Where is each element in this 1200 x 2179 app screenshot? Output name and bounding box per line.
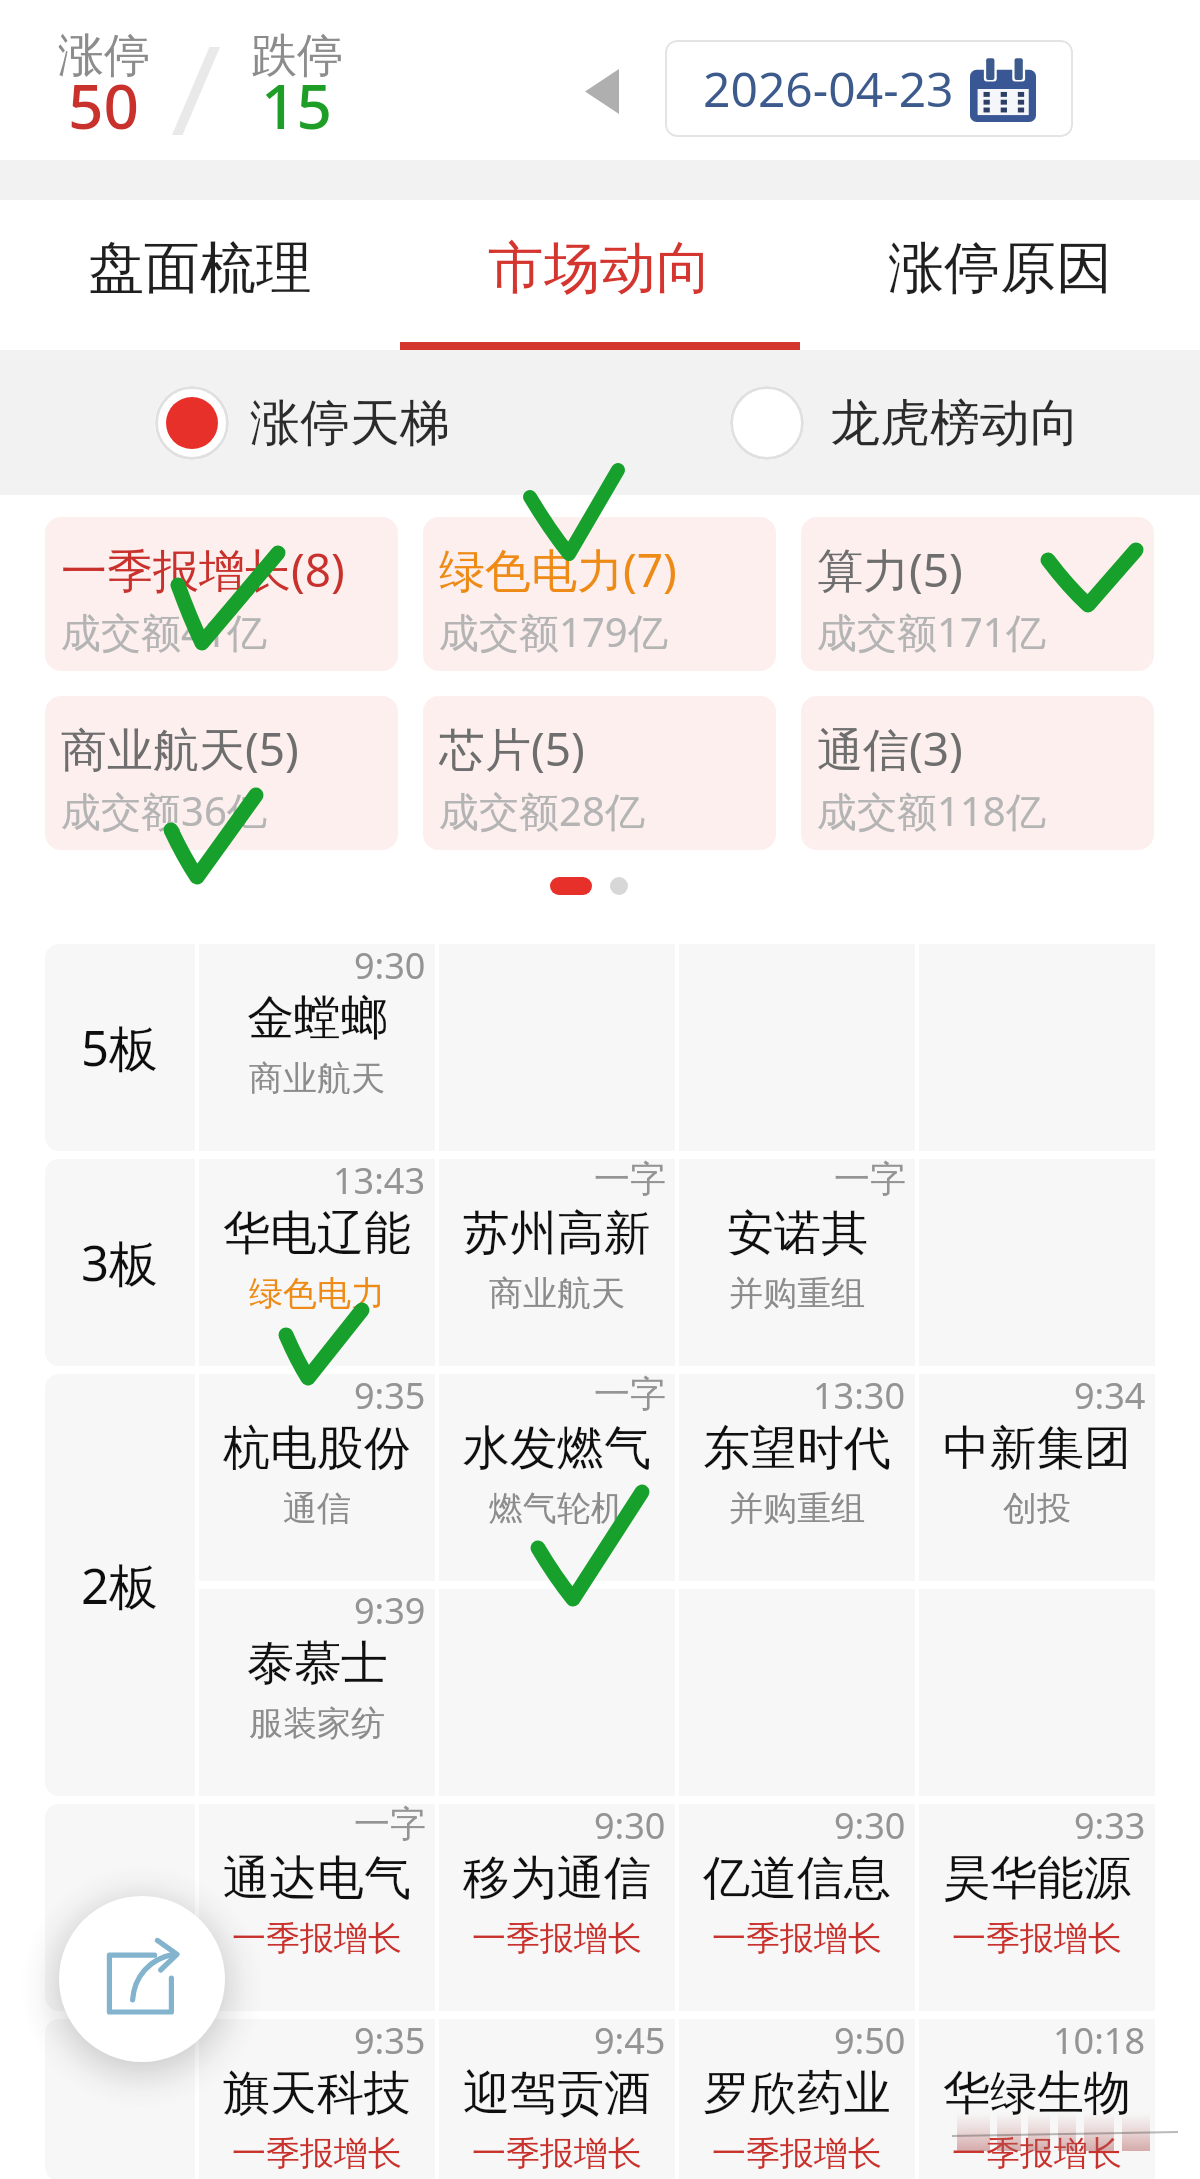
button[interactable]: 市场动向 <box>400 200 800 350</box>
button[interactable]: Share <box>59 1896 225 2062</box>
staticText: 一字 <box>834 1156 906 1201</box>
staticText: 商业航天(5) <box>61 717 299 780</box>
button[interactable]: 芯片(5) <box>423 696 776 850</box>
staticText: 昊华能源 <box>943 1849 1131 1908</box>
button[interactable]: 9:45 <box>439 2019 675 2179</box>
staticText: 13:30 <box>813 1371 906 1420</box>
button[interactable]: 9:35 <box>199 2019 435 2179</box>
staticText: 涨停原因 <box>888 233 1112 304</box>
staticText: 3板 <box>81 1229 159 1296</box>
button[interactable]: 9:30 <box>439 1804 675 2011</box>
staticText: 服装家纺 <box>249 1702 385 1745</box>
staticText: 成交额36亿 <box>61 783 267 838</box>
staticText: 市场动向 <box>488 233 712 304</box>
staticText: 成交额118亿 <box>817 783 1046 838</box>
staticText: 东望时代 <box>703 1419 891 1478</box>
staticText: 安诺其 <box>727 1204 868 1263</box>
button[interactable]: 9:50 <box>679 2019 915 2179</box>
button[interactable]: 一字 <box>199 1804 435 2011</box>
staticText: 一季报增长 <box>952 2132 1122 2175</box>
button[interactable]: 绿色电力(7) <box>423 517 776 671</box>
staticText: 并购重组 <box>729 1487 865 1530</box>
button[interactable]: 9:30 <box>199 944 435 1151</box>
staticText: 罗欣药业 <box>703 2064 891 2123</box>
button[interactable]: 龙虎榜动向 <box>730 386 1080 460</box>
button[interactable]: 涨停原因 <box>800 200 1200 350</box>
button[interactable]: 9:35 <box>199 1374 435 1581</box>
staticText: 跌停 <box>251 27 343 85</box>
staticText: 5板 <box>81 1014 159 1081</box>
staticText: 泰慕士 <box>247 1634 388 1693</box>
staticText: 9:45 <box>594 2016 666 2065</box>
staticText: 移为通信 <box>463 1849 651 1908</box>
staticText: 成交额179亿 <box>439 604 668 659</box>
button[interactable]: 一字 <box>439 1374 675 1581</box>
staticText: 中新集团 <box>943 1419 1131 1478</box>
button[interactable]: 13:30 <box>679 1374 915 1581</box>
button[interactable]: 涨停天梯 <box>155 386 450 460</box>
button[interactable]: 2026-04-23 <box>665 40 1073 137</box>
staticText: 15 <box>261 63 332 147</box>
staticText: 龙虎榜动向 <box>830 392 1080 455</box>
staticText: 并购重组 <box>729 1272 865 1315</box>
button[interactable]: 商业航天(5) <box>45 696 398 850</box>
staticText: 9:35 <box>354 2016 426 2065</box>
staticText: 一季报增长 <box>232 2132 402 2175</box>
staticText: 苏州高新 <box>463 1204 651 1263</box>
button[interactable]: Previous day <box>562 47 642 135</box>
button[interactable]: 9:39 <box>199 1589 435 1796</box>
staticText: 通信(3) <box>817 717 963 780</box>
staticText: 涨停 <box>58 27 150 85</box>
button[interactable]: 算力(5) <box>801 517 1154 671</box>
button[interactable]: 一字 <box>439 1159 675 1366</box>
staticText: 华电辽能 <box>223 1204 411 1263</box>
staticText: 2板 <box>81 1552 159 1619</box>
staticText: 9:30 <box>834 1801 906 1850</box>
staticText: 水发燃气 <box>463 1419 651 1478</box>
button[interactable]: 9:30 <box>679 1804 915 2011</box>
button[interactable]: 盘面梳理 <box>0 200 400 350</box>
staticText: 华绿生物 <box>943 2064 1131 2123</box>
staticText: 一字 <box>594 1156 666 1201</box>
button[interactable]: 通信(3) <box>801 696 1154 850</box>
staticText: 一季报增长 <box>712 2132 882 2175</box>
button[interactable]: 9:34 <box>919 1374 1155 1581</box>
staticText: 2026-04-23 <box>703 56 954 121</box>
staticText: 9:50 <box>834 2016 906 2065</box>
staticText: 一季报增长 <box>472 2132 642 2175</box>
button[interactable]: 9:33 <box>919 1804 1155 2011</box>
button[interactable] <box>439 1589 675 1796</box>
staticText: 9:35 <box>354 1371 426 1420</box>
staticText: 一字 <box>594 1371 666 1416</box>
staticText: 成交额28亿 <box>439 783 645 838</box>
staticText: 芯片(5) <box>439 717 585 780</box>
staticText: 一季报增长 <box>232 1917 402 1960</box>
staticText: 9:30 <box>594 1801 666 1850</box>
button[interactable]: 一字 <box>679 1159 915 1366</box>
button[interactable]: 10:18 <box>919 2019 1155 2179</box>
staticText: 9:30 <box>354 941 426 990</box>
staticText: 一字 <box>354 1801 426 1846</box>
staticText: 成交额171亿 <box>817 604 1046 659</box>
staticText: 商业航天 <box>249 1057 385 1100</box>
staticText: 绿色电力(7) <box>439 538 677 601</box>
button[interactable]: 一季报增长(8) <box>45 517 398 671</box>
staticText: 算力(5) <box>817 538 963 601</box>
staticText: 9:33 <box>1074 1801 1146 1850</box>
staticText: 盘面梳理 <box>88 233 312 304</box>
staticText: 通达电气 <box>223 1849 411 1908</box>
staticText: 迎驾贡酒 <box>463 2064 651 2123</box>
button[interactable]: 13:43 <box>199 1159 435 1366</box>
staticText: 亿道信息 <box>703 1849 891 1908</box>
staticText: 一季报增长(8) <box>61 538 345 601</box>
staticText: 成交额41亿 <box>61 604 267 659</box>
staticText: 通信 <box>283 1487 351 1530</box>
staticText: 50 <box>68 63 139 147</box>
staticText: 一季报增长 <box>472 1917 642 1960</box>
